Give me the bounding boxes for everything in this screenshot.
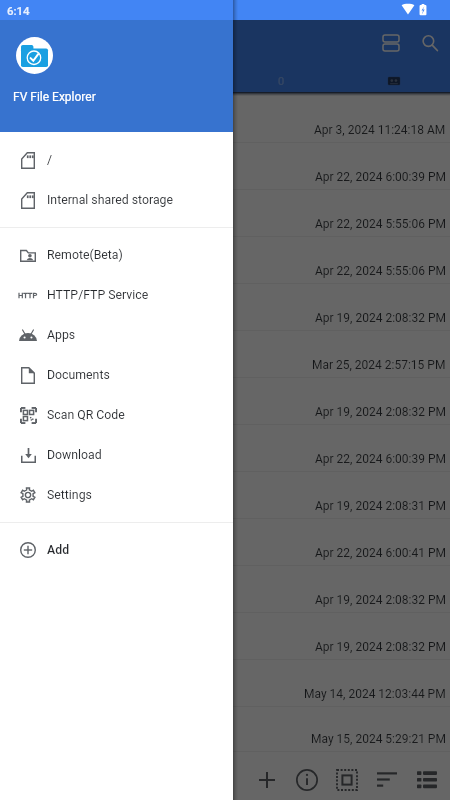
button[interactable]: HTTP <box>0 275 233 315</box>
button[interactable]: Grid view <box>371 23 411 63</box>
button[interactable]: May 15, 2024 5:29:21 PM <box>0 707 450 752</box>
button[interactable]: Select all <box>327 756 367 796</box>
staticText: FV File Explorer <box>13 90 96 104</box>
button[interactable]: Add <box>0 530 233 570</box>
button[interactable]: Sort <box>367 756 407 796</box>
staticText: Apps <box>47 328 76 342</box>
button[interactable]: / <box>0 140 233 180</box>
button[interactable]: Apr 19, 2024 2:08:32 PM <box>0 378 450 425</box>
staticText: Scan QR Code <box>47 408 125 422</box>
staticText: Add <box>47 543 70 557</box>
button[interactable]: Info <box>287 756 327 796</box>
button[interactable]: View mode <box>407 756 447 796</box>
button[interactable]: Apr 22, 2024 5:55:06 PM <box>0 237 450 284</box>
button[interactable]: Download <box>0 435 233 475</box>
staticText: Apr 3, 2024 11:24:18 AM <box>314 123 446 137</box>
staticText: Download <box>47 448 102 462</box>
button[interactable]: Apr 22, 2024 6:00:39 PM <box>0 425 450 472</box>
button[interactable]: Apps <box>0 315 233 355</box>
staticText: Internal shared storage <box>47 193 174 207</box>
button[interactable]: Apr 19, 2024 2:08:32 PM <box>0 613 450 660</box>
staticText: Mar 25, 2024 2:57:15 PM <box>312 358 446 372</box>
button[interactable]: May 14, 2024 12:03:44 PM <box>0 660 450 707</box>
button[interactable]: Internal shared storage <box>0 180 233 220</box>
button[interactable]: Tab <box>374 71 414 91</box>
staticText: Remote(Beta) <box>47 248 123 262</box>
staticText: 0 <box>278 75 285 88</box>
button[interactable]: Scan QR Code <box>0 395 233 435</box>
button[interactable]: Documents <box>0 355 233 395</box>
button[interactable]: Apr 22, 2024 5:55:06 PM <box>0 190 450 237</box>
staticText: May 15, 2024 5:29:21 PM <box>311 732 446 746</box>
staticText: HTTP <box>18 291 38 300</box>
button[interactable]: 0 <box>261 71 301 91</box>
staticText: Apr 22, 2024 5:55:06 PM <box>315 264 446 278</box>
staticText: Apr 19, 2024 2:08:31 PM <box>315 499 446 513</box>
button[interactable]: Mar 25, 2024 2:57:15 PM <box>0 331 450 378</box>
staticText: Apr 19, 2024 2:08:32 PM <box>315 593 446 607</box>
staticText: May 14, 2024 12:03:44 PM <box>304 687 446 701</box>
staticText: Apr 22, 2024 5:55:06 PM <box>315 217 446 231</box>
button[interactable]: Apr 19, 2024 2:08:31 PM <box>0 472 450 519</box>
button[interactable]: Settings <box>0 475 233 515</box>
staticText: / <box>47 153 53 167</box>
staticText: Apr 19, 2024 2:08:32 PM <box>315 640 446 654</box>
staticText: Apr 19, 2024 2:08:32 PM <box>315 311 446 325</box>
staticText: Apr 19, 2024 2:08:32 PM <box>315 405 446 419</box>
staticText: Apr 22, 2024 6:00:39 PM <box>315 452 446 466</box>
button[interactable]: Apr 3, 2024 11:24:18 AM <box>0 96 450 143</box>
staticText: Apr 22, 2024 6:00:41 PM <box>315 546 446 560</box>
staticText: HTTP/FTP Service <box>47 288 149 302</box>
button[interactable]: Search <box>410 23 450 63</box>
button[interactable]: Remote(Beta) <box>0 235 233 275</box>
button[interactable]: Add <box>247 756 287 796</box>
button[interactable]: Apr 19, 2024 2:08:32 PM <box>0 566 450 613</box>
button[interactable]: Apr 22, 2024 6:00:41 PM <box>0 519 450 566</box>
staticText: Apr 22, 2024 6:00:39 PM <box>315 170 446 184</box>
button[interactable]: Apr 22, 2024 6:00:39 PM <box>0 143 450 190</box>
staticText: 6:14 <box>7 4 30 17</box>
staticText: Settings <box>47 488 92 502</box>
button[interactable]: Apr 19, 2024 2:08:32 PM <box>0 284 450 331</box>
staticText: Documents <box>47 368 110 382</box>
